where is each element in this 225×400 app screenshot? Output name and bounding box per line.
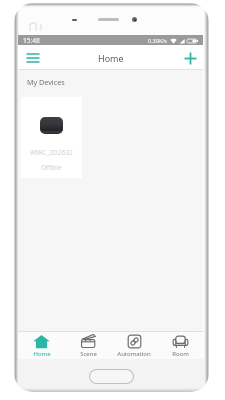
staticText: Scene — [80, 350, 97, 358]
button[interactable]: Home — [18, 332, 65, 359]
button[interactable]: Home button — [89, 369, 134, 384]
staticText: Offline — [41, 163, 62, 172]
staticText: My Devices — [27, 77, 65, 87]
button[interactable]: Add device — [180, 48, 200, 68]
button[interactable]: Open navigation menu — [23, 48, 43, 68]
staticText: Home — [98, 52, 124, 64]
staticText: WIRC_2D2632 — [30, 148, 73, 157]
staticText: 0.39K/s — [148, 37, 167, 44]
staticText: 15:48 — [23, 36, 40, 45]
button[interactable]: Automation — [111, 332, 157, 359]
button[interactable]: Room — [157, 332, 203, 359]
button[interactable]: WIRC_2D2632 — [21, 97, 82, 178]
staticText: Home — [33, 350, 51, 358]
staticText: Room — [172, 350, 189, 358]
button[interactable]: Scene — [65, 332, 111, 359]
staticText: Automation — [117, 350, 151, 358]
